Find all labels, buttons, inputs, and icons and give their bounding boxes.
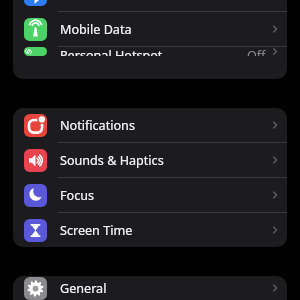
staticText: Mobile Data (60, 21, 132, 38)
staticText: Sounds & Haptics (60, 152, 164, 169)
button[interactable]: Personal Hotspot (13, 47, 287, 56)
button[interactable]: General (13, 276, 287, 300)
staticText: Screen Time (60, 222, 133, 239)
button[interactable]: Bluetooth (13, 0, 287, 11)
button[interactable]: Screen Time (13, 213, 287, 247)
staticText: Notifications (60, 117, 135, 134)
button[interactable]: Mobile Data (13, 12, 287, 46)
button[interactable]: Sounds & Haptics (13, 143, 287, 177)
button[interactable]: Focus (13, 178, 287, 212)
staticText: Focus (60, 187, 95, 204)
staticText: Personal Hotspot (60, 47, 163, 56)
button[interactable]: Notifications (13, 108, 287, 142)
staticText: General (60, 280, 107, 297)
staticText: Off (247, 47, 266, 56)
